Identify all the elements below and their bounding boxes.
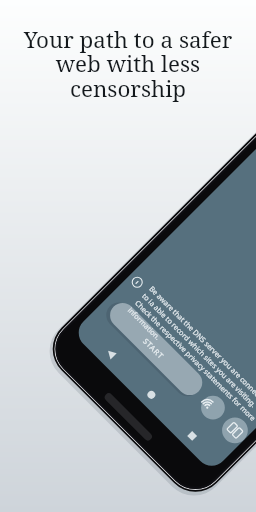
staticText: Your path to a safer web with less censo… (17, 24, 239, 104)
